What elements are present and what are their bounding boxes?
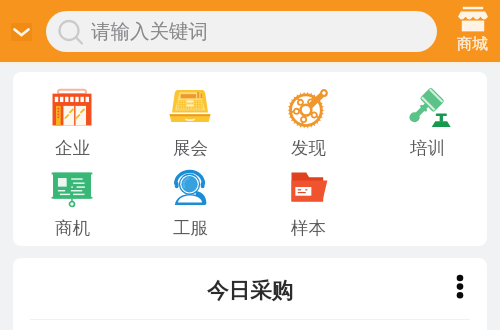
staticText: 企业 — [55, 137, 90, 159]
button[interactable]: 样本 — [249, 167, 368, 239]
button[interactable]: 企业 — [13, 87, 131, 159]
staticText: 请输入关键词 — [91, 19, 208, 44]
button[interactable]: 商机 — [13, 167, 131, 239]
staticText: 展会 — [173, 137, 208, 159]
staticText: 样本 — [291, 217, 326, 239]
staticText: 商机 — [55, 217, 90, 239]
button[interactable]: 展会 — [131, 87, 249, 159]
button[interactable]: 培训 — [368, 87, 487, 159]
staticText: 商城 — [457, 34, 488, 54]
button[interactable]: 工服 — [131, 167, 249, 239]
button[interactable]: More options — [443, 265, 477, 299]
staticText: 工服 — [173, 217, 208, 239]
button[interactable]: 请输入关键词 — [46, 11, 437, 52]
button[interactable]: 发现 — [249, 87, 368, 159]
button[interactable]: Expand categories — [11, 23, 32, 41]
staticText: 培训 — [410, 137, 445, 159]
button[interactable]: 商城 — [446, 6, 499, 54]
staticText: 发现 — [291, 137, 326, 159]
staticText: 今日采购 — [13, 277, 487, 304]
